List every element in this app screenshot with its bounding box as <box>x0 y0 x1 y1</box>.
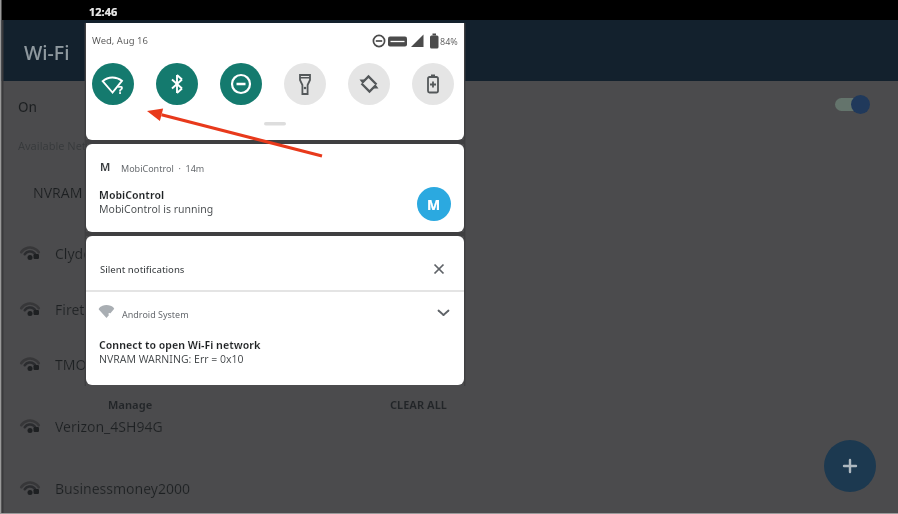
staticText: TMOBILE-9378 <box>55 355 152 374</box>
staticText: M <box>100 159 111 174</box>
staticText: 84% <box>440 35 458 47</box>
staticText: NVRAM WARNING: Err = 0x10 <box>99 352 244 366</box>
button[interactable] <box>156 63 198 105</box>
button[interactable] <box>86 236 464 290</box>
staticText: MobiControl is running <box>99 202 214 216</box>
button[interactable] <box>86 144 464 232</box>
button[interactable] <box>412 63 454 105</box>
staticText: Android System <box>122 308 189 320</box>
staticText: On <box>18 98 38 116</box>
staticText: Wed, Aug 16 <box>92 34 148 47</box>
staticText: Connect to open Wi-Fi network <box>99 338 261 352</box>
staticText: Clyde2pts <box>55 244 120 263</box>
staticText: MobiControl · 14m <box>121 162 205 174</box>
button[interactable] <box>0 404 898 448</box>
staticText: ? <box>118 83 123 97</box>
staticText: Manage <box>108 397 153 412</box>
staticText: Businessmoney2000 <box>55 479 191 498</box>
button[interactable] <box>380 391 458 415</box>
button[interactable] <box>92 63 134 105</box>
button[interactable] <box>348 63 390 105</box>
button[interactable] <box>824 440 876 492</box>
staticText: NVRAM WARNING: Err = 0x10 <box>33 183 226 202</box>
staticText: MobiControl <box>99 188 165 202</box>
button[interactable] <box>0 342 898 386</box>
staticText: Available Networks <box>18 138 117 153</box>
button[interactable] <box>0 88 898 122</box>
staticText: CLEAR ALL <box>390 397 447 412</box>
staticText: Firetruck <box>55 300 113 319</box>
staticText: Verizon_4SH94G <box>55 417 163 436</box>
button[interactable] <box>86 292 464 385</box>
staticText: Wi-Fi <box>24 39 70 66</box>
button[interactable] <box>0 287 898 331</box>
staticText: Silent notifications <box>100 263 185 276</box>
staticText: 12:46 <box>89 4 118 19</box>
button[interactable] <box>220 63 262 105</box>
button[interactable] <box>0 466 898 510</box>
button[interactable] <box>0 231 898 275</box>
staticText: M <box>427 195 441 214</box>
button[interactable] <box>284 63 326 105</box>
button[interactable] <box>96 391 166 415</box>
